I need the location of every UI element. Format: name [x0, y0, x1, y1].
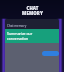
button[interactable] — [42, 51, 59, 56]
staticText: Chat memory — [7, 24, 27, 28]
staticText: CHAT MEMORY — [22, 5, 43, 16]
staticText: Summarize our conversation — [7, 31, 33, 41]
